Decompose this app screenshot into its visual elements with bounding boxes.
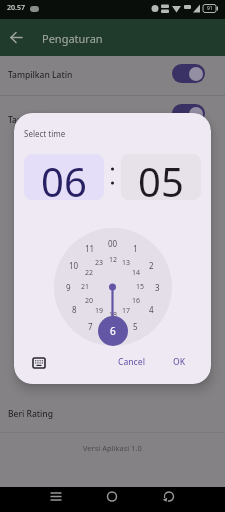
staticText: 12 [109, 255, 118, 265]
button[interactable] [172, 64, 205, 83]
button[interactable] [158, 487, 178, 512]
staticText: 15 [136, 282, 145, 292]
staticText: 2 [149, 260, 154, 271]
staticText: 13 [122, 258, 131, 268]
staticText: 22 [85, 268, 94, 278]
button[interactable] [46, 487, 66, 512]
button[interactable] [102, 487, 122, 512]
staticText: 20 [85, 296, 94, 306]
staticText: 05 [138, 154, 184, 200]
staticText: 17 [122, 306, 131, 316]
staticText: 06 [41, 154, 87, 200]
staticText: 10 [69, 260, 79, 271]
staticText: 3 [155, 282, 160, 293]
staticText: 19 [95, 306, 104, 316]
staticText: 1 [133, 243, 138, 254]
button[interactable]: 06 [24, 154, 104, 200]
staticText: 4 [149, 304, 154, 315]
button[interactable]: OK [164, 354, 194, 370]
staticText: 18 [109, 310, 118, 320]
staticText: Select time [24, 128, 66, 139]
staticText: Tampilkan Latin [8, 69, 73, 81]
staticText: 7 [88, 321, 93, 332]
staticText: 14 [132, 268, 141, 278]
button[interactable] [172, 104, 205, 123]
button[interactable] [27, 352, 51, 374]
staticText: 21 [81, 282, 90, 292]
staticText: 91 [207, 5, 213, 12]
staticText: Pengaturan [42, 31, 103, 46]
button[interactable] [8, 27, 30, 49]
staticText: 00 [108, 238, 118, 249]
staticText: 11 [85, 243, 95, 254]
staticText: 6 [110, 324, 116, 338]
staticText: Beri Rating [8, 408, 53, 420]
button[interactable]: Cancel [110, 354, 152, 370]
staticText: Tampilkan Terjemahan [8, 114, 101, 126]
staticText: 9 [66, 282, 71, 293]
button[interactable] [0, 400, 225, 430]
staticText: 6 [111, 327, 116, 338]
staticText: Cancel [118, 356, 145, 368]
staticText: 23 [95, 258, 104, 268]
staticText: 8 [72, 304, 77, 315]
staticText: 20.57 [7, 3, 25, 13]
staticText: 5 [133, 321, 138, 332]
button[interactable]: 05 [121, 154, 201, 200]
staticText: 16 [132, 296, 141, 306]
staticText: Versi Aplikasi 1.0 [83, 443, 142, 453]
staticText: OK [173, 356, 186, 368]
button[interactable] [0, 56, 225, 95]
